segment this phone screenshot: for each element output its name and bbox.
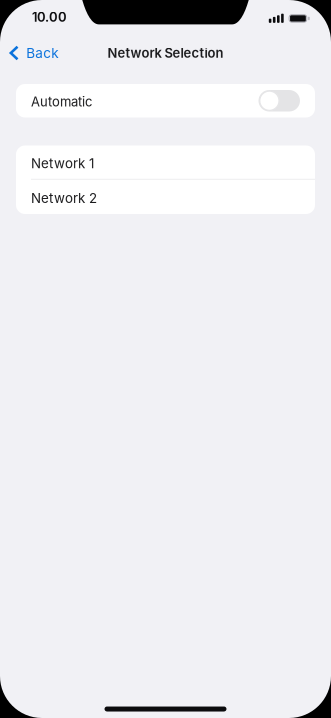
staticText: Network 2 (31, 190, 97, 206)
staticText: Network 1 (31, 155, 94, 171)
staticText: Network Selection (107, 45, 223, 61)
staticText: Back (26, 45, 58, 61)
staticText: 10.00 (32, 9, 67, 25)
button[interactable]: Back (0, 36, 66, 70)
button[interactable]: Automatic (16, 84, 315, 117)
staticText: Automatic (31, 94, 92, 110)
button[interactable]: Network 1 (16, 145, 315, 180)
button[interactable]: Network 2 (16, 180, 315, 214)
